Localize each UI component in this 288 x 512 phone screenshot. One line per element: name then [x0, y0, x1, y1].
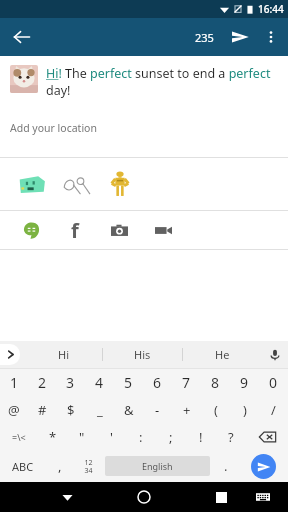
button[interactable]: Sticker robot [102, 166, 138, 202]
button[interactable]: ! [186, 423, 216, 450]
staticText: 6 [153, 373, 162, 392]
staticText: @ [8, 401, 20, 419]
button[interactable]: 2 [28, 369, 56, 396]
staticText: 235 [195, 30, 214, 45]
button[interactable]: 9 [230, 369, 259, 396]
button[interactable]: + [172, 396, 201, 423]
button[interactable]: ? [216, 423, 246, 450]
button[interactable]: ' [96, 423, 126, 450]
staticText: " [79, 428, 85, 446]
staticText: =\< [12, 431, 26, 443]
staticText: Hi! The perfect sunset to end a perfect … [46, 65, 278, 99]
button[interactable]: : [126, 423, 156, 450]
staticText: 5 [124, 373, 133, 392]
button[interactable]: Sticker hand [58, 166, 94, 202]
staticText: _ [97, 401, 103, 419]
button[interactable]: 5 [114, 369, 143, 396]
staticText: 8 [211, 373, 220, 392]
staticText: Add your location [10, 121, 97, 135]
button[interactable]: _ [85, 396, 114, 423]
staticText: - [155, 401, 160, 419]
staticText: # [38, 401, 47, 419]
button[interactable]: 6 [143, 369, 172, 396]
staticText: ( [214, 401, 218, 419]
button[interactable]: Hangouts [16, 215, 46, 245]
button[interactable]: Add your location [10, 121, 288, 135]
staticText: ' [110, 428, 113, 446]
button[interactable]: " [67, 423, 96, 450]
button[interactable]: * [38, 423, 67, 450]
button[interactable]: 8 [201, 369, 230, 396]
button[interactable]: English [105, 456, 210, 476]
button[interactable]: Sticker house [14, 166, 50, 202]
button[interactable]: =\< [0, 423, 38, 450]
button[interactable]: His [103, 341, 182, 368]
staticText: / [271, 401, 276, 419]
button[interactable]: ( [201, 396, 230, 423]
staticText: $ [67, 401, 75, 419]
staticText: : [139, 428, 143, 446]
staticText: 9 [240, 373, 249, 392]
button[interactable]: Voice input [262, 342, 288, 368]
button[interactable]: Send [224, 21, 256, 53]
staticText: English [142, 460, 173, 472]
staticText: ABC [12, 459, 34, 474]
button[interactable]: Backspace [246, 423, 288, 450]
button[interactable]: Avatar [10, 65, 38, 93]
button[interactable]: More options [256, 22, 286, 52]
staticText: + [183, 401, 191, 419]
staticText: Hi [58, 347, 69, 362]
button[interactable]: Expand suggestions [0, 344, 20, 365]
button[interactable]: & [114, 396, 143, 423]
button[interactable]: / [259, 396, 288, 423]
staticText: * [49, 428, 57, 446]
button[interactable]: 12 34 [73, 450, 103, 482]
button[interactable]: . [212, 450, 239, 482]
button[interactable]: ABC [0, 450, 46, 482]
button[interactable]: He [183, 341, 262, 368]
button[interactable]: # [28, 396, 56, 423]
button[interactable]: ; [156, 423, 186, 450]
button[interactable]: Recent apps [208, 484, 234, 510]
staticText: ) [243, 401, 247, 419]
staticText: f [71, 217, 79, 244]
button[interactable]: Send message [239, 450, 288, 482]
staticText: ? [228, 428, 234, 446]
button[interactable]: 7 [172, 369, 201, 396]
staticText: 0 [269, 373, 278, 392]
staticText: . [224, 457, 228, 475]
staticText: 7 [182, 373, 191, 392]
staticText: 3 [66, 373, 75, 392]
staticText: His [134, 347, 151, 362]
staticText: ; [169, 428, 173, 446]
button[interactable]: Video [148, 215, 178, 245]
button[interactable]: Hi [24, 341, 102, 368]
staticText: 12 34 [84, 458, 93, 475]
staticText: , [58, 457, 62, 475]
button[interactable]: - [143, 396, 172, 423]
button[interactable]: Facebook [60, 215, 90, 245]
staticText: 1 [10, 373, 19, 392]
button[interactable]: , [46, 450, 73, 482]
button[interactable]: 0 [259, 369, 288, 396]
button[interactable]: 3 [56, 369, 85, 396]
staticText: He [215, 347, 230, 362]
staticText: 16:44 [258, 2, 284, 16]
button[interactable]: @ [0, 396, 28, 423]
staticText: ! [199, 428, 203, 446]
button[interactable]: Home [131, 484, 157, 510]
button[interactable]: 4 [85, 369, 114, 396]
staticText: & [124, 401, 134, 419]
button[interactable]: Camera [104, 215, 134, 245]
staticText: 4 [95, 373, 104, 392]
button[interactable]: Back [6, 21, 38, 53]
button[interactable]: ) [230, 396, 259, 423]
button[interactable]: $ [56, 396, 85, 423]
button[interactable]: Hide keyboard [54, 484, 80, 510]
button[interactable]: 1 [0, 369, 28, 396]
staticText: 2 [38, 373, 47, 392]
button[interactable]: Switch keyboard [250, 484, 276, 510]
